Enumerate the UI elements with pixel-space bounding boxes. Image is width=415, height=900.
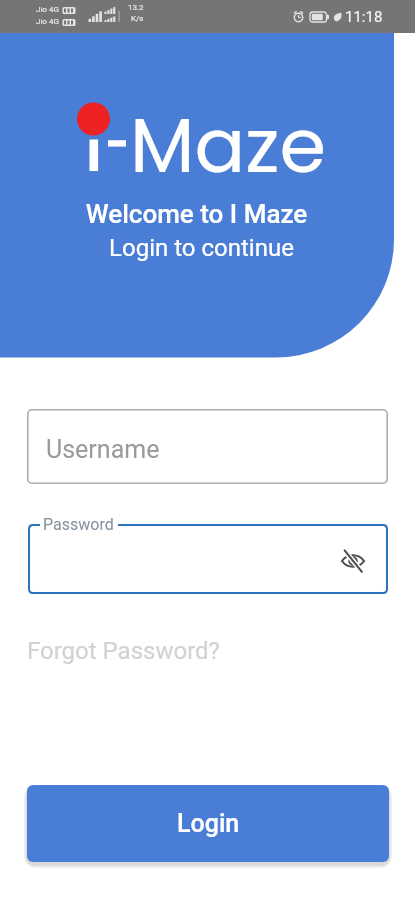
staticText: Forgot Password?: [27, 637, 220, 665]
staticText: Password: [43, 515, 114, 534]
staticText: Maze: [130, 93, 326, 198]
button[interactable]: Login: [27, 785, 389, 862]
staticText: Login: [177, 809, 240, 838]
button[interactable]: Forgot Password?: [27, 637, 220, 665]
staticText: Jio 4G: [36, 5, 59, 14]
button[interactable]: Password: [28, 524, 388, 594]
staticText: 13.2: [128, 3, 144, 12]
staticText: K/s: [131, 14, 144, 23]
staticText: 11:18: [345, 8, 383, 26]
button[interactable]: Toggle password visibility: [341, 549, 365, 573]
staticText: Welcome to I Maze: [0, 199, 393, 229]
button[interactable]: Username: [27, 409, 388, 484]
staticText: Login to continue: [5, 234, 398, 262]
staticText: Jio 4G: [36, 17, 59, 26]
staticText: Username: [46, 435, 160, 464]
